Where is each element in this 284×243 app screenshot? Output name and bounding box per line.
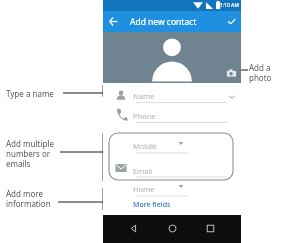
staticText: Add a: [249, 62, 271, 73]
staticText: Phone: [133, 111, 156, 121]
button[interactable]: Home: [166, 222, 179, 235]
staticText: photo: [249, 72, 272, 83]
staticText: emails: [6, 158, 31, 169]
button[interactable]: Recents: [204, 222, 217, 235]
button[interactable]: Add a photo: [226, 68, 237, 79]
button[interactable]: More fields: [133, 200, 173, 210]
staticText: Add multiple: [6, 138, 54, 149]
button[interactable]: Expand name: [227, 92, 237, 102]
staticText: Type a name: [6, 88, 54, 99]
staticText: Mobile: [133, 141, 158, 151]
staticText: Add more: [6, 188, 44, 199]
staticText: numbers or: [6, 148, 51, 159]
staticText: Add new contact: [130, 16, 197, 28]
button[interactable]: Back: [127, 222, 140, 235]
staticText: Email: [133, 166, 153, 176]
staticText: Home: [133, 184, 155, 194]
staticText: Name: [133, 91, 155, 101]
button[interactable]: Back: [107, 15, 120, 28]
staticText: More fields: [133, 200, 171, 210]
staticText: 11:10 AM: [217, 2, 239, 9]
button[interactable]: Save: [225, 15, 238, 28]
staticText: information: [6, 198, 51, 209]
